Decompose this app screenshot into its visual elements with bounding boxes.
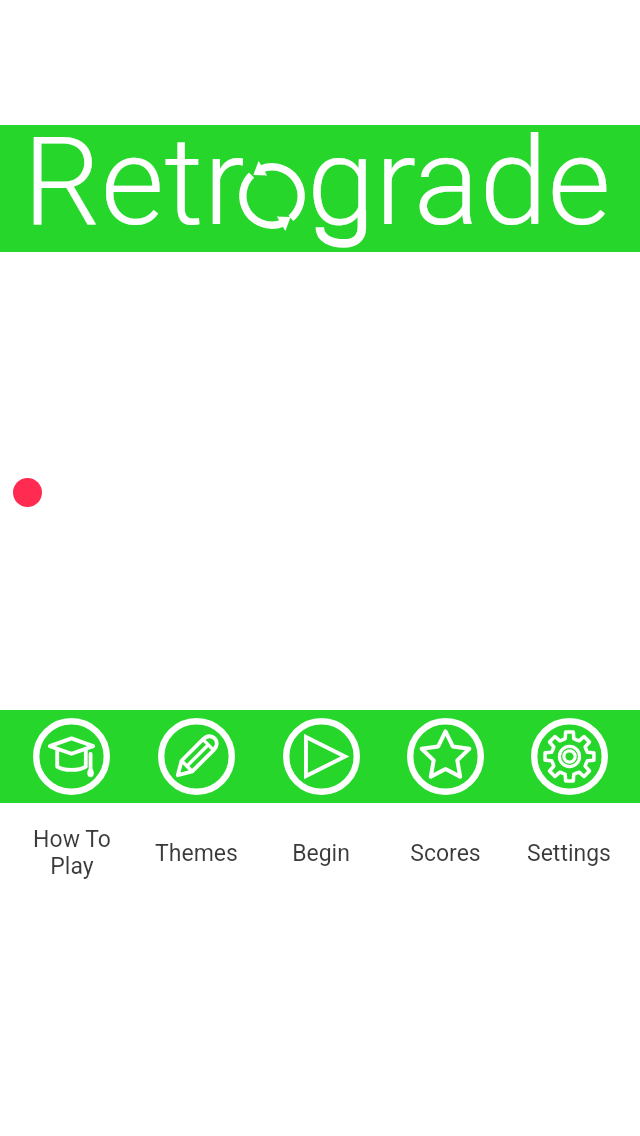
button[interactable]: How To Play xyxy=(9,710,134,803)
staticText: Begin xyxy=(292,840,350,867)
staticText: Retr xyxy=(23,110,245,237)
button[interactable]: Themes xyxy=(134,840,259,867)
button[interactable]: How To Play xyxy=(9,826,134,880)
staticText: Settings xyxy=(527,840,611,867)
button[interactable]: Settings xyxy=(507,710,631,803)
staticText: grade xyxy=(307,110,611,237)
button[interactable]: Settings xyxy=(507,840,631,867)
button[interactable]: Scores xyxy=(383,710,507,803)
staticText: Themes xyxy=(155,840,238,867)
button[interactable]: Begin xyxy=(259,710,383,803)
button[interactable]: Themes xyxy=(134,710,259,803)
button[interactable]: Scores xyxy=(383,840,507,867)
button[interactable]: Begin xyxy=(259,840,383,867)
staticText: Scores xyxy=(410,840,481,867)
staticText: How To Play xyxy=(33,826,111,880)
